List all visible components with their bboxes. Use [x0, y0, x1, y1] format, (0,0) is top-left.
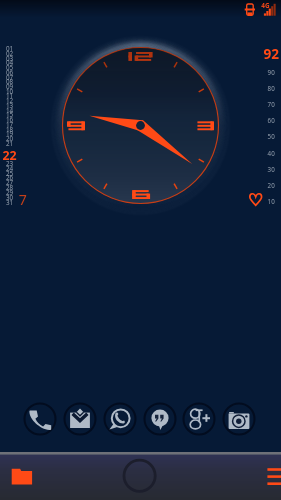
button[interactable]: Google Plus: [182, 402, 216, 436]
button[interactable]: Menu: [262, 460, 281, 492]
button[interactable]: Phone: [23, 402, 57, 436]
button[interactable]: Email: [63, 402, 97, 436]
button[interactable]: Battery 92 percent: [243, 42, 281, 210]
button[interactable]: Hangouts: [143, 402, 177, 436]
button[interactable]: WhatsApp: [103, 402, 137, 436]
button[interactable]: Apps folder: [4, 459, 40, 495]
button[interactable]: Camera: [222, 402, 256, 436]
button[interactable]: Clock widget: [62, 47, 219, 204]
button[interactable]: Home: [121, 458, 158, 495]
button[interactable]: Calendar, 22 July: [0, 42, 24, 210]
